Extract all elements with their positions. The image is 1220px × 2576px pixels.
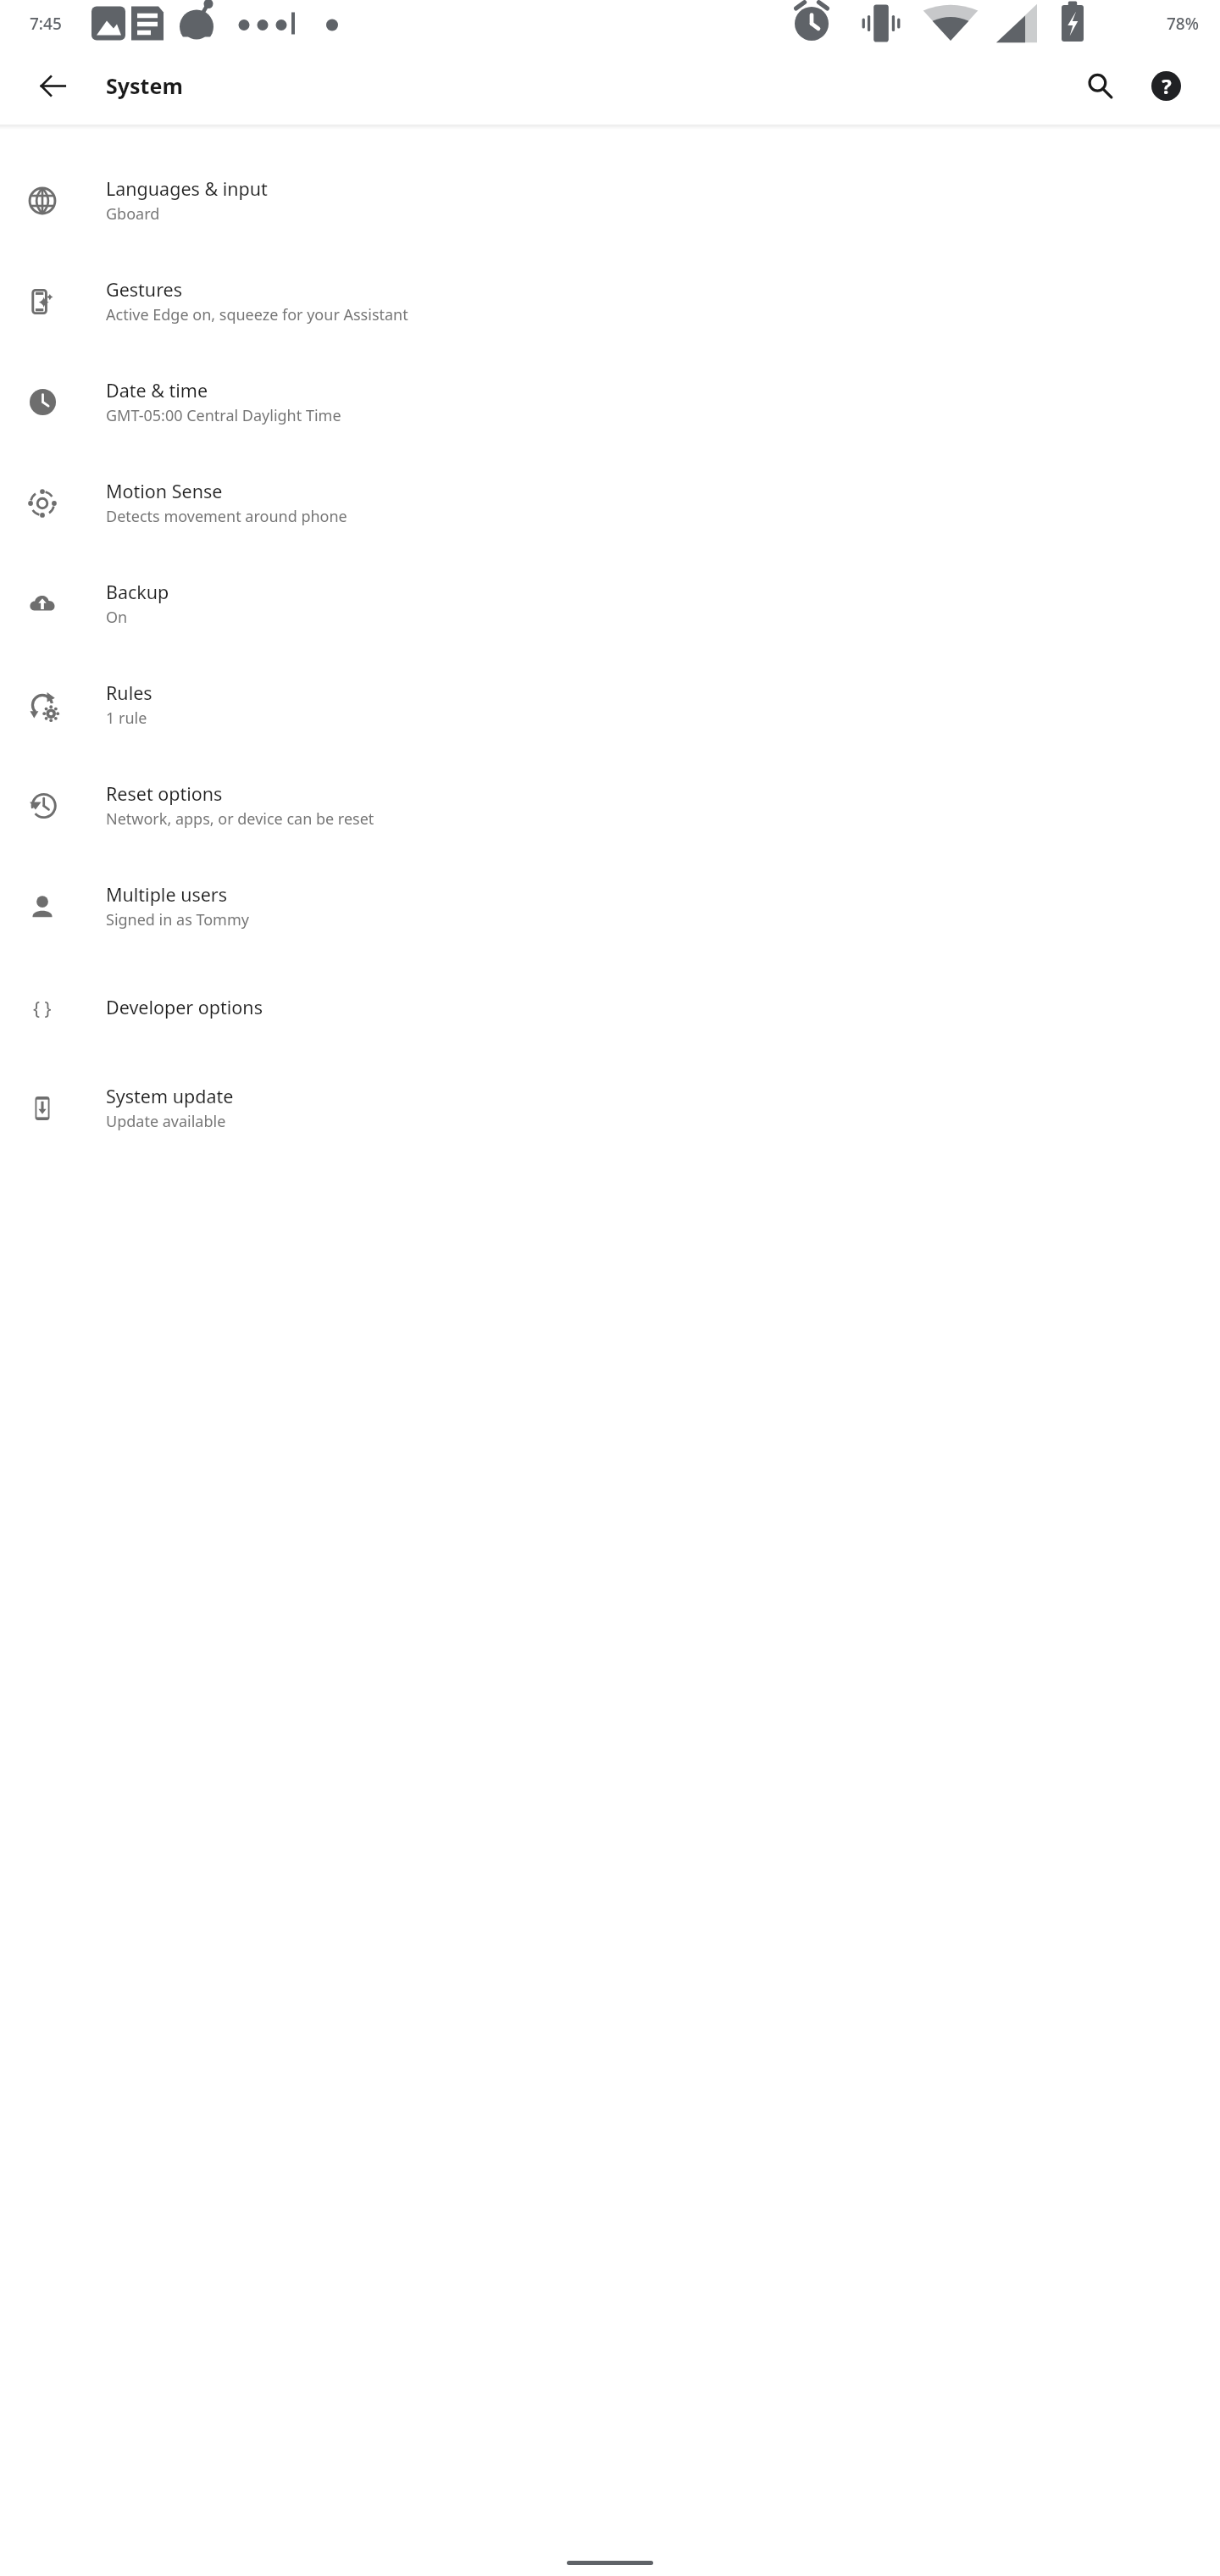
staticText: 7:45 [30,13,62,35]
staticText: Gboard [106,203,160,225]
button[interactable]: Motion Sense [0,452,1220,553]
button[interactable]: Date & time [0,352,1220,452]
staticText: Motion Sense [106,479,223,503]
button[interactable]: { } [0,957,1220,1058]
staticText: Signed in as Tommy [106,909,249,930]
staticText: System [106,71,183,100]
staticText: Date & time [106,378,208,402]
staticText: Active Edge on, squeeze for your Assista… [106,304,408,325]
button[interactable]: Help [1133,53,1199,119]
staticText: 1 rule [106,708,147,729]
staticText: Developer options [106,995,263,1019]
button[interactable]: Search [1067,53,1133,119]
staticText: Multiple users [106,882,228,907]
button[interactable]: Backup [0,553,1220,654]
staticText: Detects movement around phone [106,506,347,527]
button[interactable]: Back [21,54,85,118]
staticText: Backup [106,580,169,604]
staticText: System update [106,1084,234,1108]
staticText: On [106,607,128,628]
staticText: Update available [106,1111,226,1132]
staticText: 78% [1167,13,1199,35]
staticText: Network, apps, or device can be reset [106,808,374,830]
staticText: ? [1162,72,1172,100]
staticText: Gestures [106,277,182,302]
button[interactable]: Gestures [0,251,1220,352]
staticText: Rules [106,680,152,705]
button[interactable]: Reset options [0,755,1220,856]
staticText: GMT-05:00 Central Daylight Time [106,405,341,426]
staticText: { } [33,996,52,1020]
staticText: Reset options [106,781,223,806]
button[interactable]: Languages & input [0,150,1220,251]
button[interactable]: System update [0,1058,1220,1158]
button[interactable]: Rules [0,654,1220,755]
staticText: Languages & input [106,176,268,201]
button[interactable]: Multiple users [0,856,1220,957]
